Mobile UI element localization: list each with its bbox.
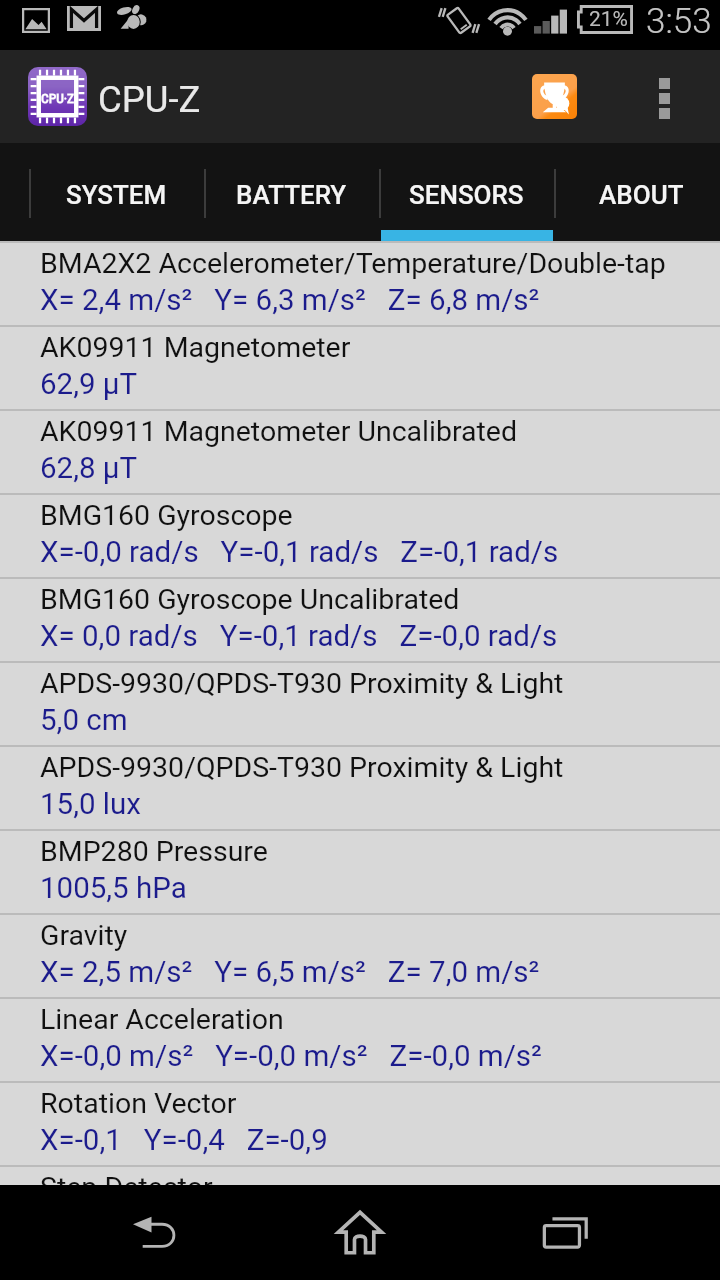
staticText: APDS-9930/QPDS-T930 Proximity & Light	[40, 667, 564, 700]
staticText: 62,8 µT	[40, 451, 138, 486]
button[interactable]: BMP280 Pressure	[0, 829, 720, 913]
staticText: BATTERY	[236, 180, 347, 210]
staticText: 3:53	[646, 1, 712, 42]
button[interactable]: BATTERY	[204, 143, 379, 241]
staticText: Linear Acceleration	[40, 1003, 284, 1036]
button[interactable]: Rotation Vector	[0, 1081, 720, 1165]
staticText: CPU·Z	[41, 90, 75, 106]
button[interactable]: SYSTEM	[29, 143, 204, 241]
staticText: AK09911 Magnetometer	[40, 331, 351, 364]
button[interactable]: Back	[105, 1185, 205, 1280]
staticText: SENSORS	[409, 180, 524, 210]
button[interactable]: Step Detector	[0, 1165, 720, 1185]
button[interactable]: Linear Acceleration	[0, 997, 720, 1081]
button[interactable]: ABOUT	[554, 143, 720, 241]
staticText: X=-0,0 rad/s Y=-0,1 rad/s Z=-0,1 rad/s	[40, 535, 559, 570]
staticText: CPU-Z	[98, 78, 201, 121]
staticText: Rotation Vector	[40, 1087, 237, 1120]
staticText: BMG160 Gyroscope	[40, 499, 293, 532]
staticText: 21%	[589, 7, 628, 32]
staticText: X= 0,0 rad/s Y=-0,1 rad/s Z=-0,0 rad/s	[40, 619, 558, 654]
button[interactable]: Play Games	[510, 50, 598, 143]
button[interactable]: BMG160 Gyroscope	[0, 493, 720, 577]
button[interactable]: SENSORS	[379, 143, 554, 241]
staticText: X=-0,1 Y=-0,4 Z=-0,9	[40, 1123, 328, 1158]
staticText: X=-0,0 m/s² Y=-0,0 m/s² Z=-0,0 m/s²	[40, 1039, 542, 1074]
staticText: 15,0 lux	[40, 787, 141, 822]
button[interactable]: AK09911 Magnetometer	[0, 325, 720, 409]
staticText: 62,9 µT	[40, 367, 138, 402]
button[interactable]: APDS-9930/QPDS-T930 Proximity & Light	[0, 661, 720, 745]
staticText: 5,0 cm	[40, 703, 128, 738]
button[interactable]: More options	[615, 50, 713, 143]
staticText: ABOUT	[599, 180, 684, 210]
staticText: SYSTEM	[66, 180, 167, 210]
button[interactable]: APDS-9930/QPDS-T930 Proximity & Light	[0, 745, 720, 829]
button[interactable]: BMA2X2 Accelerometer/Temperature/Double-…	[0, 241, 720, 325]
staticText: Step Detector	[40, 1171, 213, 1185]
staticText: APDS-9930/QPDS-T930 Proximity & Light	[40, 751, 564, 784]
button[interactable]: AK09911 Magnetometer Uncalibrated	[0, 409, 720, 493]
button[interactable]: Home	[310, 1185, 410, 1280]
button[interactable]: Gravity	[0, 913, 720, 997]
staticText: X= 2,5 m/s² Y= 6,5 m/s² Z= 7,0 m/s²	[40, 955, 540, 990]
button[interactable]: BMG160 Gyroscope Uncalibrated	[0, 577, 720, 661]
staticText: X= 2,4 m/s² Y= 6,3 m/s² Z= 6,8 m/s²	[40, 283, 540, 318]
staticText: AK09911 Magnetometer Uncalibrated	[40, 415, 518, 448]
staticText: Gravity	[40, 919, 128, 952]
staticText: BMA2X2 Accelerometer/Temperature/Double-…	[40, 247, 666, 280]
staticText: BMG160 Gyroscope Uncalibrated	[40, 583, 460, 616]
staticText: 1005,5 hPa	[40, 871, 187, 906]
staticText: BMP280 Pressure	[40, 835, 268, 868]
button[interactable]: Recents	[515, 1185, 615, 1280]
